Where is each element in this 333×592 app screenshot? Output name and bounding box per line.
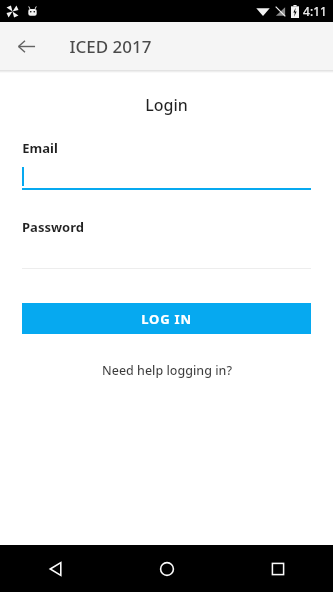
staticText: Email	[22, 139, 58, 157]
staticText: Password	[22, 218, 84, 236]
staticText: 4:11	[303, 3, 327, 19]
staticText: Need help logging in?	[102, 362, 232, 379]
button[interactable]: Need help logging in?	[94, 359, 240, 382]
button[interactable]: Home	[111, 545, 222, 592]
staticText: ICED 2017	[69, 35, 152, 58]
staticText: Login	[145, 94, 188, 116]
staticText: LOG IN	[141, 310, 192, 328]
button[interactable]	[22, 245, 311, 269]
button[interactable]: Recent apps	[222, 545, 333, 592]
button[interactable]	[22, 166, 311, 190]
button[interactable]: Back	[0, 545, 111, 592]
button[interactable]: Back	[10, 30, 42, 62]
button[interactable]: LOG IN	[22, 303, 311, 334]
